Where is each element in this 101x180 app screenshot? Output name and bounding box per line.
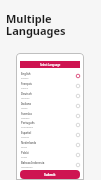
other: Select Português (76, 123, 80, 127)
staticText: Bahasa Indonesia (21, 161, 45, 165)
staticText: French (21, 87, 28, 90)
button[interactable]: Nederlands (17, 140, 83, 149)
other: Select Français (76, 84, 80, 88)
other: Select English (76, 74, 80, 78)
button[interactable]: English (17, 71, 83, 80)
staticText: Spanish (21, 136, 30, 139)
staticText: Submit (44, 173, 56, 177)
other: Select Español (76, 133, 80, 137)
other: Select Deutsch (76, 94, 80, 98)
staticText: Deutsch (21, 92, 32, 96)
button[interactable]: Deutsch (17, 91, 83, 100)
staticText: Portuguese (21, 126, 33, 129)
button[interactable]: Italiano (17, 101, 83, 110)
staticText: Italiano (21, 102, 32, 106)
staticText: Dutch (21, 146, 28, 149)
staticText: Italian (21, 107, 28, 110)
staticText: Nederlands (21, 141, 37, 145)
button[interactable]: Submit (20, 170, 80, 179)
button[interactable]: Português (17, 120, 83, 129)
staticText: Select Language (40, 63, 61, 67)
staticText: Indonesian (21, 166, 33, 169)
button[interactable]: Polski (17, 150, 83, 159)
staticText: English (21, 72, 31, 76)
staticText: English (21, 77, 29, 80)
staticText: Français (21, 82, 32, 86)
staticText: Polski (21, 151, 29, 155)
staticText: German (21, 97, 30, 100)
other: Select Italiano (76, 104, 80, 108)
button[interactable]: Svenska (17, 111, 83, 120)
staticText: Multiple Languages (6, 11, 66, 38)
staticText: Português (21, 121, 35, 125)
staticText: Svenska (21, 112, 32, 116)
other: Select Svenska (76, 114, 80, 118)
button[interactable]: Bahasa Indonesia (17, 160, 83, 169)
other: Select Polski (76, 153, 80, 157)
staticText: Swedish (21, 117, 30, 120)
staticText: Polish (21, 156, 28, 159)
other: Select Nederlands (76, 143, 80, 147)
button[interactable]: Français (17, 81, 83, 90)
other: Select Bahasa Indonesia (76, 163, 80, 167)
button[interactable]: Español (17, 130, 83, 139)
staticText: Español (21, 131, 32, 135)
